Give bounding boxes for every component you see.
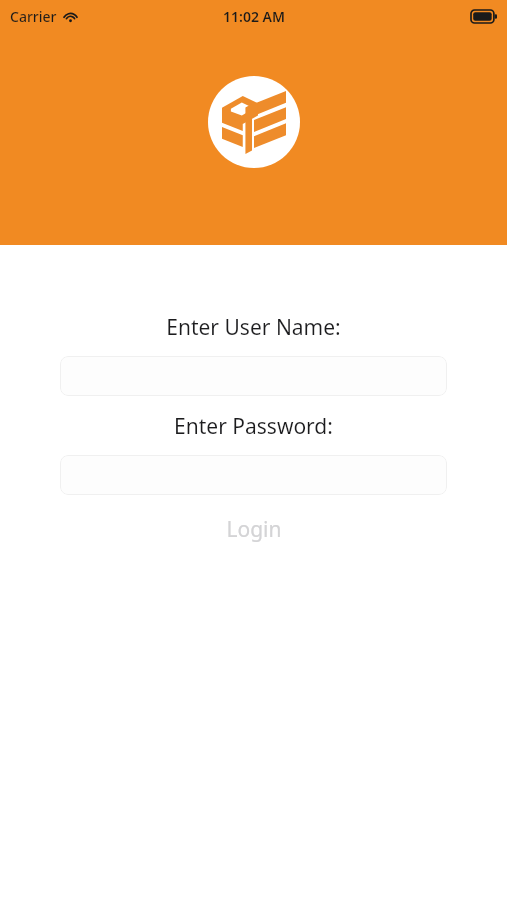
staticText: Carrier — [10, 7, 57, 26]
staticText: Enter Password: — [0, 412, 507, 441]
button[interactable]: Login — [0, 512, 507, 546]
staticText: Enter User Name: — [0, 313, 507, 342]
staticText: 11:02 AM — [223, 7, 285, 26]
staticText: Login — [226, 515, 282, 544]
